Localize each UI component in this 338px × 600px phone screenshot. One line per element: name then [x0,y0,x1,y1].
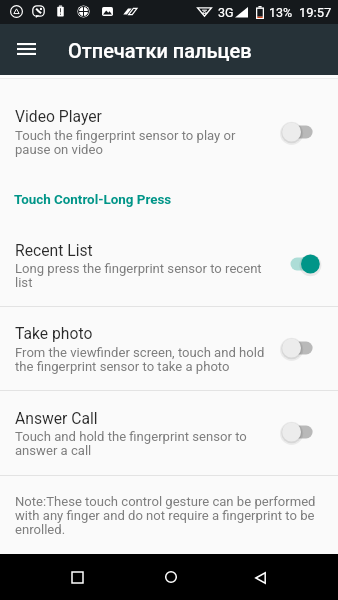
staticText: Touch Control-Long Press [14,192,172,208]
staticText: From the viewfinder screen, touch and ho… [15,345,270,375]
button[interactable]: Switch, on [279,244,323,284]
button[interactable]: Recent List [0,216,338,305]
button[interactable]: Touch Control-Long Press [0,176,338,214]
staticText: 13% [269,5,293,20]
staticText: Touch and hold the fingerprint sensor to… [15,429,270,459]
button[interactable]: Answer Call [0,391,338,474]
button[interactable]: Switch, off [279,328,323,368]
button[interactable]: Recent apps [58,558,96,596]
staticText: Long press the fingerprint sensor to rec… [15,261,270,291]
button[interactable]: Back [241,559,279,597]
staticText: 19:57 [299,5,332,20]
staticText: Отпечатки пальцев [68,39,252,62]
button[interactable]: Switch, off [279,412,323,452]
button[interactable]: Take photo [0,307,338,389]
staticText: Touch the fingerprint sensor to play or … [15,128,270,158]
staticText: Video Player [15,107,102,125]
button[interactable]: Video Player [0,84,338,172]
staticText: Recent List [15,241,93,259]
button[interactable]: Switch, off [279,112,323,152]
staticText: 3G [218,5,234,20]
staticText: Take photo [15,324,93,342]
staticText: Answer Call [15,409,98,427]
button[interactable]: Home [152,558,190,596]
button[interactable]: Open navigation menu [7,29,46,68]
staticText: Note:These touch control gesture can be … [15,494,325,538]
